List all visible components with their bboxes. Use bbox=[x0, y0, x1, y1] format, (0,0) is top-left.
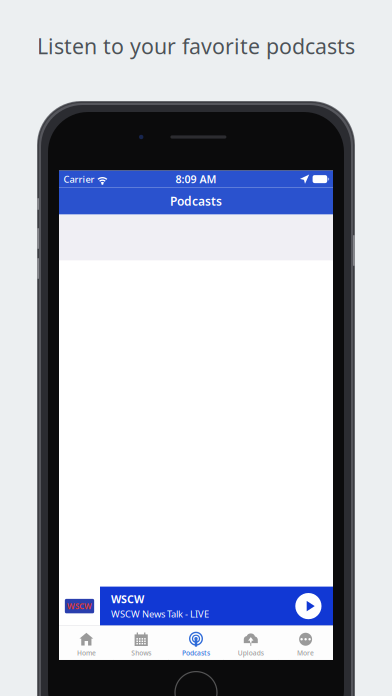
staticText: More bbox=[297, 648, 314, 657]
staticText: WSCW bbox=[67, 601, 92, 611]
staticText: Carrier bbox=[64, 173, 95, 185]
staticText: Listen to your favorite podcasts bbox=[37, 32, 355, 60]
button[interactable]: Shows bbox=[114, 626, 169, 660]
button[interactable]: WSCW bbox=[100, 587, 333, 626]
staticText: 8:09 AM bbox=[175, 172, 216, 186]
button[interactable]: Home bbox=[59, 626, 114, 660]
staticText: Podcasts bbox=[182, 648, 210, 657]
staticText: Home bbox=[77, 648, 96, 657]
button[interactable]: Podcasts bbox=[169, 626, 223, 660]
staticText: WSCW News Talk - LIVE bbox=[111, 608, 209, 620]
staticText: Podcasts bbox=[170, 193, 222, 209]
staticText: WSCW bbox=[111, 592, 144, 606]
button[interactable]: Uploads bbox=[223, 626, 278, 660]
staticText: Shows bbox=[131, 648, 151, 657]
button[interactable]: More bbox=[278, 626, 333, 660]
staticText: Uploads bbox=[238, 648, 264, 657]
